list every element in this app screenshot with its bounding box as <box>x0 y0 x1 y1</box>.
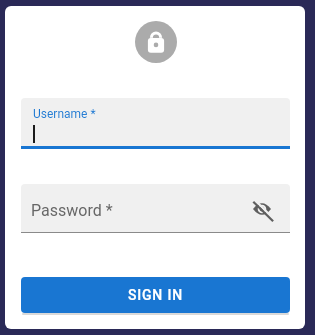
button[interactable] <box>250 197 274 221</box>
button[interactable]: Username * <box>21 98 290 149</box>
button[interactable]: Password * <box>21 184 290 233</box>
staticText: SIGN IN <box>128 287 183 303</box>
staticText: Password * <box>31 201 113 220</box>
staticText: Username * <box>33 107 96 121</box>
button[interactable]: SIGN IN <box>21 277 290 313</box>
